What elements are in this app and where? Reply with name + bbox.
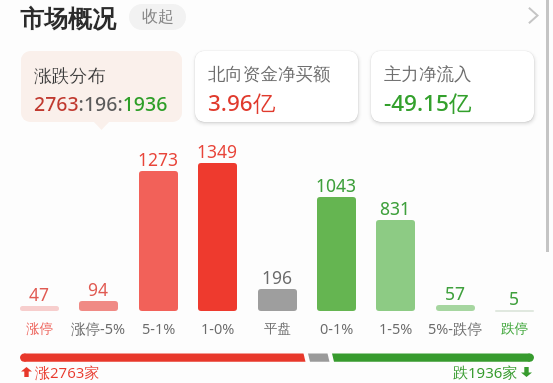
staticText: 涨2763家 — [35, 362, 100, 382]
staticText: 57 — [445, 281, 466, 305]
staticText: 3.96亿 — [208, 87, 276, 118]
staticText: 收起 — [142, 7, 174, 27]
staticText: 1-0% — [201, 318, 235, 338]
button[interactable] — [70, 136, 127, 336]
staticText: 涨停-5% — [71, 318, 126, 338]
staticText: 0-1% — [320, 318, 354, 338]
button[interactable]: 跌1936家 — [453, 362, 532, 382]
button[interactable]: 收起 — [129, 4, 186, 30]
button[interactable]: 涨跌分布 — [21, 51, 182, 122]
button[interactable] — [308, 136, 365, 336]
staticText: -49.15亿 — [384, 87, 472, 118]
button[interactable] — [130, 136, 187, 336]
staticText: 831 — [380, 196, 411, 220]
button[interactable] — [11, 136, 68, 336]
staticText: 2763:196:1936 — [34, 90, 168, 117]
staticText: 5%-跌停 — [428, 318, 483, 338]
staticText: 47 — [29, 282, 50, 306]
staticText: 北向资金净买额 — [208, 63, 331, 85]
staticText: 涨跌分布 — [34, 65, 106, 87]
button[interactable] — [249, 136, 306, 336]
staticText: 1-5% — [379, 318, 413, 338]
button[interactable]: 市场概况 — [14, 0, 194, 38]
staticText: 94 — [88, 277, 109, 301]
staticText: 市场概况 — [20, 4, 116, 34]
staticText: 1349 — [197, 139, 238, 163]
button[interactable] — [189, 136, 246, 336]
staticText: 1043 — [316, 173, 357, 197]
staticText: 196 — [262, 265, 293, 289]
button[interactable]: 北向资金净买额 — [195, 51, 358, 122]
staticText: 1273 — [138, 147, 179, 171]
staticText: 平盘 — [264, 320, 291, 337]
staticText: 主力净流入 — [384, 63, 472, 85]
staticText: 5 — [509, 286, 520, 310]
staticText: 跌停 — [501, 320, 528, 337]
button[interactable] — [367, 136, 424, 336]
staticText: 5-1% — [142, 318, 176, 338]
staticText: 跌1936家 — [453, 362, 518, 382]
button[interactable]: Open market overview details — [518, 1, 546, 29]
button[interactable] — [486, 136, 543, 336]
button[interactable] — [427, 136, 484, 336]
button[interactable]: 涨2763家 — [21, 362, 100, 382]
button[interactable]: 主力净流入 — [371, 51, 534, 122]
staticText: 涨停 — [26, 320, 53, 337]
